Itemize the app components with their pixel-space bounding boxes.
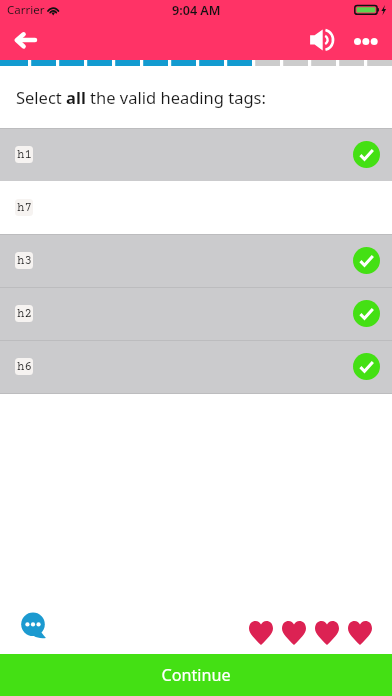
staticText: Continue [161,664,231,686]
button[interactable]: Back [0,24,52,60]
button[interactable]: h7 [0,181,392,234]
staticText: h6 [17,360,32,374]
button[interactable]: h3 [0,234,392,287]
staticText: h2 [17,307,32,321]
button[interactable]: h2 [0,287,392,340]
staticText: 9:04 AM [172,2,221,19]
button[interactable]: h1 [0,128,392,181]
button[interactable]: Discuss [19,612,48,641]
button[interactable]: More options [348,32,382,50]
button[interactable]: Continue [0,654,392,696]
staticText: Select all the valid heading tags: [16,86,266,108]
staticText: Carrier [7,2,45,18]
staticText: h3 [17,254,32,268]
staticText: h7 [17,201,32,215]
button[interactable]: Sound [305,24,339,60]
staticText: h1 [17,148,32,162]
button[interactable]: h6 [0,340,392,393]
